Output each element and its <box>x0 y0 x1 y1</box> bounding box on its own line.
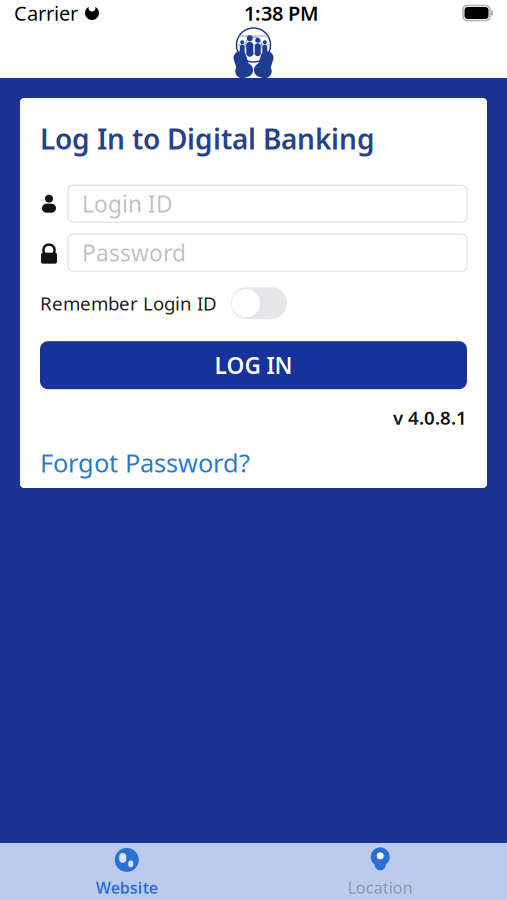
staticText: 1:38 PM <box>244 0 319 26</box>
button[interactable]: LOG IN <box>40 341 467 389</box>
staticText: Location <box>348 877 413 898</box>
staticText: LOG IN <box>214 350 292 380</box>
button[interactable]: Location <box>253 839 507 900</box>
staticText: Password <box>82 238 186 268</box>
button[interactable]: Remember Login ID <box>231 287 287 319</box>
staticText: v 4.0.8.1 <box>393 405 467 430</box>
staticText: Carrier <box>14 0 78 26</box>
staticText: Remember Login ID <box>40 291 217 316</box>
button[interactable]: Forgot Password? <box>20 440 250 486</box>
staticText: Login ID <box>82 189 173 219</box>
staticText: Website <box>96 877 158 898</box>
staticText: Forgot Password? <box>40 446 250 480</box>
button[interactable]: Website <box>0 839 253 900</box>
staticText: Log In to Digital Banking <box>40 120 375 157</box>
